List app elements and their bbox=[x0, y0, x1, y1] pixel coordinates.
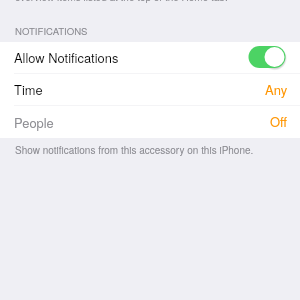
staticText: Any bbox=[265, 80, 288, 99]
staticText: Time bbox=[14, 80, 43, 98]
staticText: NOTIFICATIONS bbox=[15, 24, 88, 38]
staticText: People bbox=[14, 113, 54, 131]
button[interactable]: People bbox=[0, 106, 300, 139]
staticText: Allow Notifications bbox=[14, 48, 119, 66]
staticText: overview items listed at the top of the … bbox=[15, 0, 228, 4]
staticText: Off bbox=[270, 112, 288, 131]
button[interactable]: Time bbox=[0, 74, 300, 106]
staticText: Show notifications from this accessory o… bbox=[15, 143, 254, 157]
button[interactable]: Allow Notifications toggle bbox=[248, 45, 288, 69]
button[interactable]: Allow Notifications bbox=[0, 42, 300, 73]
